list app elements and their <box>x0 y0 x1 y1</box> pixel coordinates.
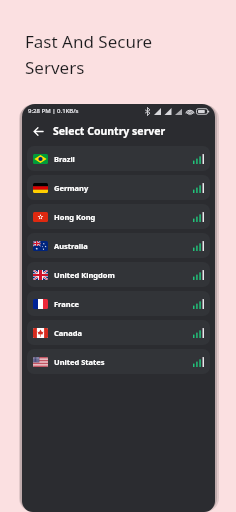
button[interactable]: United States <box>27 349 210 374</box>
button[interactable]: Canada <box>27 320 210 345</box>
staticText: Select Country server <box>53 124 166 138</box>
staticText: Canada <box>54 328 82 338</box>
staticText: France <box>54 299 80 309</box>
staticText: Servers <box>25 56 85 79</box>
button[interactable]: Back <box>27 120 49 142</box>
staticText: United States <box>54 357 105 367</box>
staticText: Brazil <box>54 154 75 164</box>
staticText: Germany <box>54 183 89 193</box>
button[interactable]: France <box>27 291 210 316</box>
staticText: United Kingdom <box>54 270 115 280</box>
button[interactable]: United Kingdom <box>27 262 210 287</box>
staticText: Fast And Secure <box>25 30 153 53</box>
staticText: Hong Kong <box>54 212 96 222</box>
button[interactable]: Brazil <box>27 146 210 171</box>
staticText: 9:28 PM | 0.1KB/s <box>28 107 79 115</box>
button[interactable]: Germany <box>27 175 210 200</box>
button[interactable]: Hong Kong <box>27 204 210 229</box>
button[interactable]: Australia <box>27 233 210 258</box>
staticText: Australia <box>54 241 88 251</box>
